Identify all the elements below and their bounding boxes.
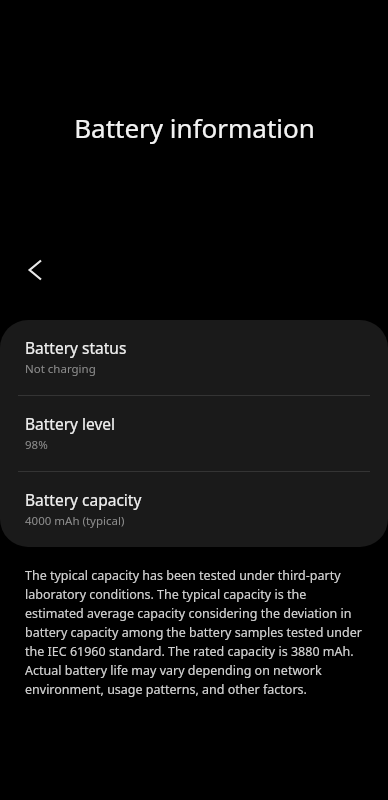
staticText: 98% [25, 437, 48, 453]
button[interactable]: Battery capacity [0, 472, 388, 547]
staticText: The typical capacity has been tested und… [25, 567, 366, 698]
button[interactable]: Navigate up [10, 246, 58, 294]
staticText: Battery status [25, 337, 127, 358]
staticText: Battery capacity [25, 489, 142, 510]
staticText: Battery level [25, 413, 116, 434]
button[interactable]: Battery status [0, 320, 388, 395]
staticText: 4000 mAh (typical) [25, 513, 125, 529]
staticText: Not charging [25, 361, 96, 377]
button[interactable]: Battery level [0, 396, 388, 471]
staticText: Battery information [74, 110, 315, 145]
